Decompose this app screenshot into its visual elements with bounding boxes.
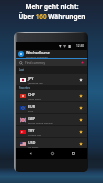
staticText: Euro xyxy=(28,109,34,112)
staticText: JPY xyxy=(28,76,34,81)
staticText: Japanese Yen xyxy=(28,81,43,84)
staticText: CHF xyxy=(28,92,35,97)
button[interactable]: Recent apps xyxy=(66,148,80,159)
staticText: EUR xyxy=(28,104,35,109)
staticText: Über 160 Währungen xyxy=(18,12,86,21)
button[interactable]: Find currency xyxy=(16,59,87,66)
button[interactable]: Back xyxy=(23,148,37,159)
staticText: GBP xyxy=(28,116,36,121)
button[interactable]: CHF xyxy=(16,90,87,101)
staticText: 12:30 xyxy=(76,44,85,48)
button[interactable]: TRY xyxy=(16,126,87,137)
staticText: Last xyxy=(19,68,24,72)
button[interactable]: EUR xyxy=(16,102,87,113)
staticText: Swiss Franc xyxy=(28,97,41,100)
staticText: Find currency xyxy=(25,61,46,65)
staticText: Turkish Lira xyxy=(28,133,41,136)
button[interactable]: USD xyxy=(16,138,87,149)
button[interactable]: Wechselkurse xyxy=(16,50,87,58)
staticText: Mehr geht nicht: xyxy=(25,2,79,11)
button[interactable]: GBP xyxy=(16,114,87,125)
staticText: US Dollar xyxy=(28,145,39,148)
staticText: Currency Converter xyxy=(26,55,48,58)
staticText: British Pound Sterling xyxy=(28,121,53,124)
button[interactable]: Home xyxy=(45,148,59,159)
staticText: Favorites xyxy=(19,86,31,90)
staticText: TRY xyxy=(28,128,35,133)
staticText: Wechselkurse xyxy=(26,50,50,55)
staticText: USD xyxy=(28,140,36,145)
button[interactable]: JPY xyxy=(16,74,87,85)
other: Show favorites xyxy=(81,61,84,64)
